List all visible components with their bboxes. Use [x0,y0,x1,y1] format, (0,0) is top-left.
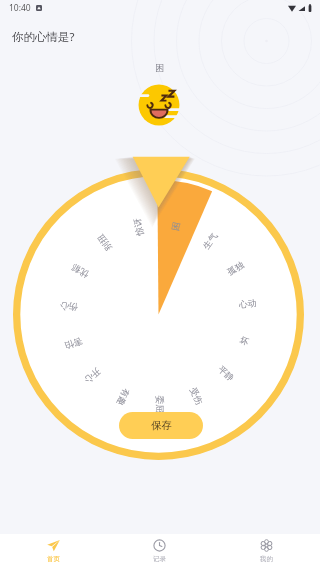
button[interactable]: 保存 [119,412,203,439]
staticText: 10:40 [9,2,31,14]
staticText: 保存 [151,419,172,432]
button[interactable]: 我的 [213,534,320,568]
staticText: 首页 [47,555,60,563]
staticText: 你的心情是? [12,29,75,45]
button[interactable]: 记录 [106,534,213,568]
staticText: 我的 [260,555,273,563]
button[interactable]: 首页 [0,534,106,568]
staticText: 记录 [153,555,166,563]
staticText: 困 [155,62,164,73]
